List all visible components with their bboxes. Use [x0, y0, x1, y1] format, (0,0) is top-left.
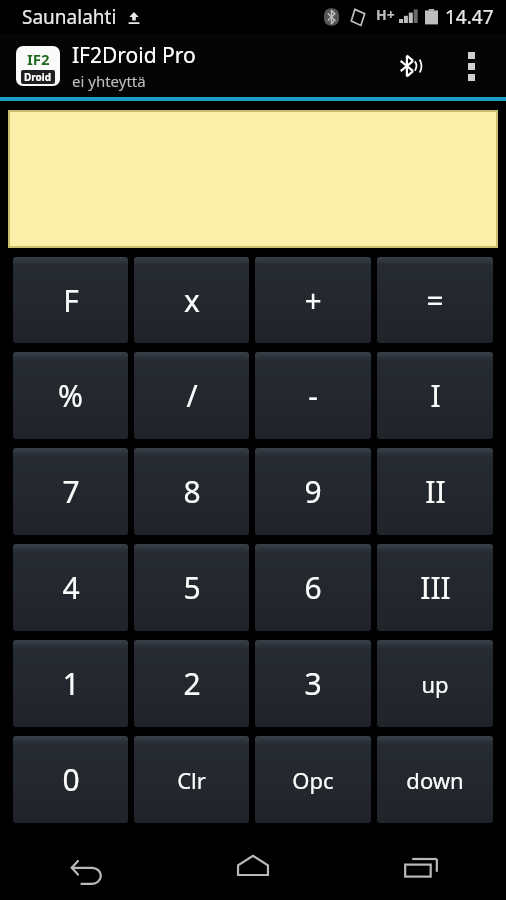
button[interactable]: Bluetooth	[384, 40, 436, 92]
button[interactable]: 1	[13, 640, 128, 727]
staticText: III	[420, 567, 451, 608]
button[interactable]: down	[377, 736, 493, 823]
staticText: Clr	[177, 765, 206, 795]
staticText: 8	[183, 471, 201, 512]
staticText: =	[426, 280, 444, 321]
staticText: 2	[183, 663, 201, 704]
staticText: I	[430, 375, 441, 416]
staticText: Opc	[292, 765, 334, 795]
button[interactable]: F	[13, 257, 128, 343]
button[interactable]: 6	[255, 544, 371, 631]
button[interactable]: 4	[13, 544, 128, 631]
button[interactable]: Opc	[255, 736, 371, 823]
button[interactable]: 3	[255, 640, 371, 727]
staticText: 6	[304, 567, 322, 608]
button[interactable]: III	[377, 544, 493, 631]
button[interactable]: More options	[450, 38, 492, 94]
staticText: Saunalahti	[22, 4, 117, 30]
staticText: 4	[62, 567, 80, 608]
staticText: %	[58, 375, 83, 416]
button[interactable]: Back	[42, 833, 128, 900]
staticText: 5	[183, 567, 201, 608]
button[interactable]: Recent apps	[378, 833, 464, 900]
staticText: 1	[62, 663, 80, 704]
staticText: 3	[304, 663, 322, 704]
staticText: H+	[376, 5, 395, 24]
button[interactable]: 0	[13, 736, 128, 823]
button[interactable]: %	[13, 352, 128, 439]
button[interactable]: Home	[210, 833, 296, 900]
staticText: Droid	[24, 70, 52, 84]
staticText: F	[63, 280, 79, 321]
staticText: +	[304, 280, 322, 321]
staticText: II	[425, 471, 446, 512]
button[interactable]: =	[377, 257, 493, 343]
button[interactable]: I	[377, 352, 493, 439]
staticText: -	[308, 375, 318, 416]
button[interactable]: x	[134, 257, 249, 343]
staticText: up	[421, 669, 449, 699]
button[interactable]: 9	[255, 448, 371, 535]
staticText: down	[406, 765, 464, 795]
staticText: 14.47	[445, 4, 494, 30]
button[interactable]: 7	[13, 448, 128, 535]
staticText: IF2	[27, 49, 50, 69]
staticText: IF2Droid Pro	[72, 41, 196, 70]
button[interactable]: 2	[134, 640, 249, 727]
staticText: x	[184, 280, 200, 321]
staticText: 7	[62, 471, 80, 512]
staticText: 9	[304, 471, 322, 512]
button[interactable]: 8	[134, 448, 249, 535]
button[interactable]: Clr	[134, 736, 249, 823]
button[interactable]: 5	[134, 544, 249, 631]
button[interactable]: -	[255, 352, 371, 439]
staticText: ei yhteyttä	[72, 71, 146, 91]
button[interactable]: II	[377, 448, 493, 535]
staticText: /	[186, 375, 198, 416]
staticText: 0	[62, 759, 80, 800]
button[interactable]: up	[377, 640, 493, 727]
button[interactable]: +	[255, 257, 371, 343]
button[interactable]: /	[134, 352, 249, 439]
